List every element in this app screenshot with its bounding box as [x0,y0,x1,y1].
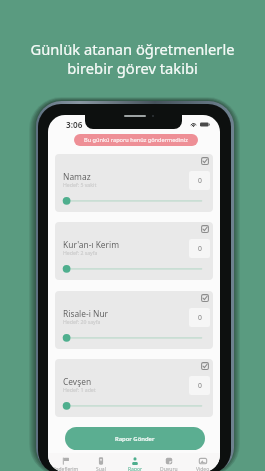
button[interactable]: Tamamlandı [201,294,209,302]
staticText: Hedeflerim [52,466,79,471]
staticText: Bu günkü raporu henüz göndermediniz [84,136,188,144]
staticText: Hedef: 1 adet [63,386,96,393]
staticText: Namaz [63,171,91,182]
button[interactable]: 0 [189,239,210,258]
staticText: 0 [198,313,202,322]
button[interactable]: 0 [189,376,210,395]
button[interactable]: Video [186,453,220,471]
staticText: Risale-i Nur [63,308,109,319]
button[interactable]: Tamamlandı [201,362,209,370]
button[interactable]: Rapor [118,453,152,471]
staticText: 0 [198,381,202,390]
staticText: Kur'an-ı Kerim [63,239,120,250]
staticText: Hedef: 5 vakit [63,181,97,188]
staticText: Hedef: 2 sayfa [63,249,98,256]
button[interactable]: Rapor Gönder [65,427,205,450]
button[interactable]: Kur'an-ı Kerim [55,222,213,280]
staticText: Günlük atanan öğretmenlerle birebir göre… [3,39,262,78]
staticText: Hedef: 20 sayfa [63,318,101,325]
button[interactable]: Hedeflerim [48,453,83,471]
staticText: Duyuru [160,466,178,471]
button[interactable]: Risale-i Nur [55,291,213,349]
staticText: Rapor [128,466,143,471]
staticText: Cevşen [63,376,92,387]
staticText: Sual [96,466,106,471]
button[interactable]: Tamamlandı [201,157,209,165]
staticText: 3:06 [66,119,83,130]
staticText: Video [196,466,210,471]
button[interactable]: 0 [189,171,210,190]
staticText: 0 [198,176,202,185]
staticText: 0 [198,244,202,253]
button[interactable]: Namaz [55,154,213,212]
button[interactable]: Cevşen [55,359,213,417]
button[interactable]: Bu günkü raporu henüz göndermediniz [74,134,198,146]
button[interactable]: Sual [83,453,118,471]
button[interactable]: Duyuru [152,453,186,471]
button[interactable]: 0 [189,308,210,327]
staticText: Rapor Gönder [115,435,155,443]
button[interactable]: Tamamlandı [201,225,209,233]
